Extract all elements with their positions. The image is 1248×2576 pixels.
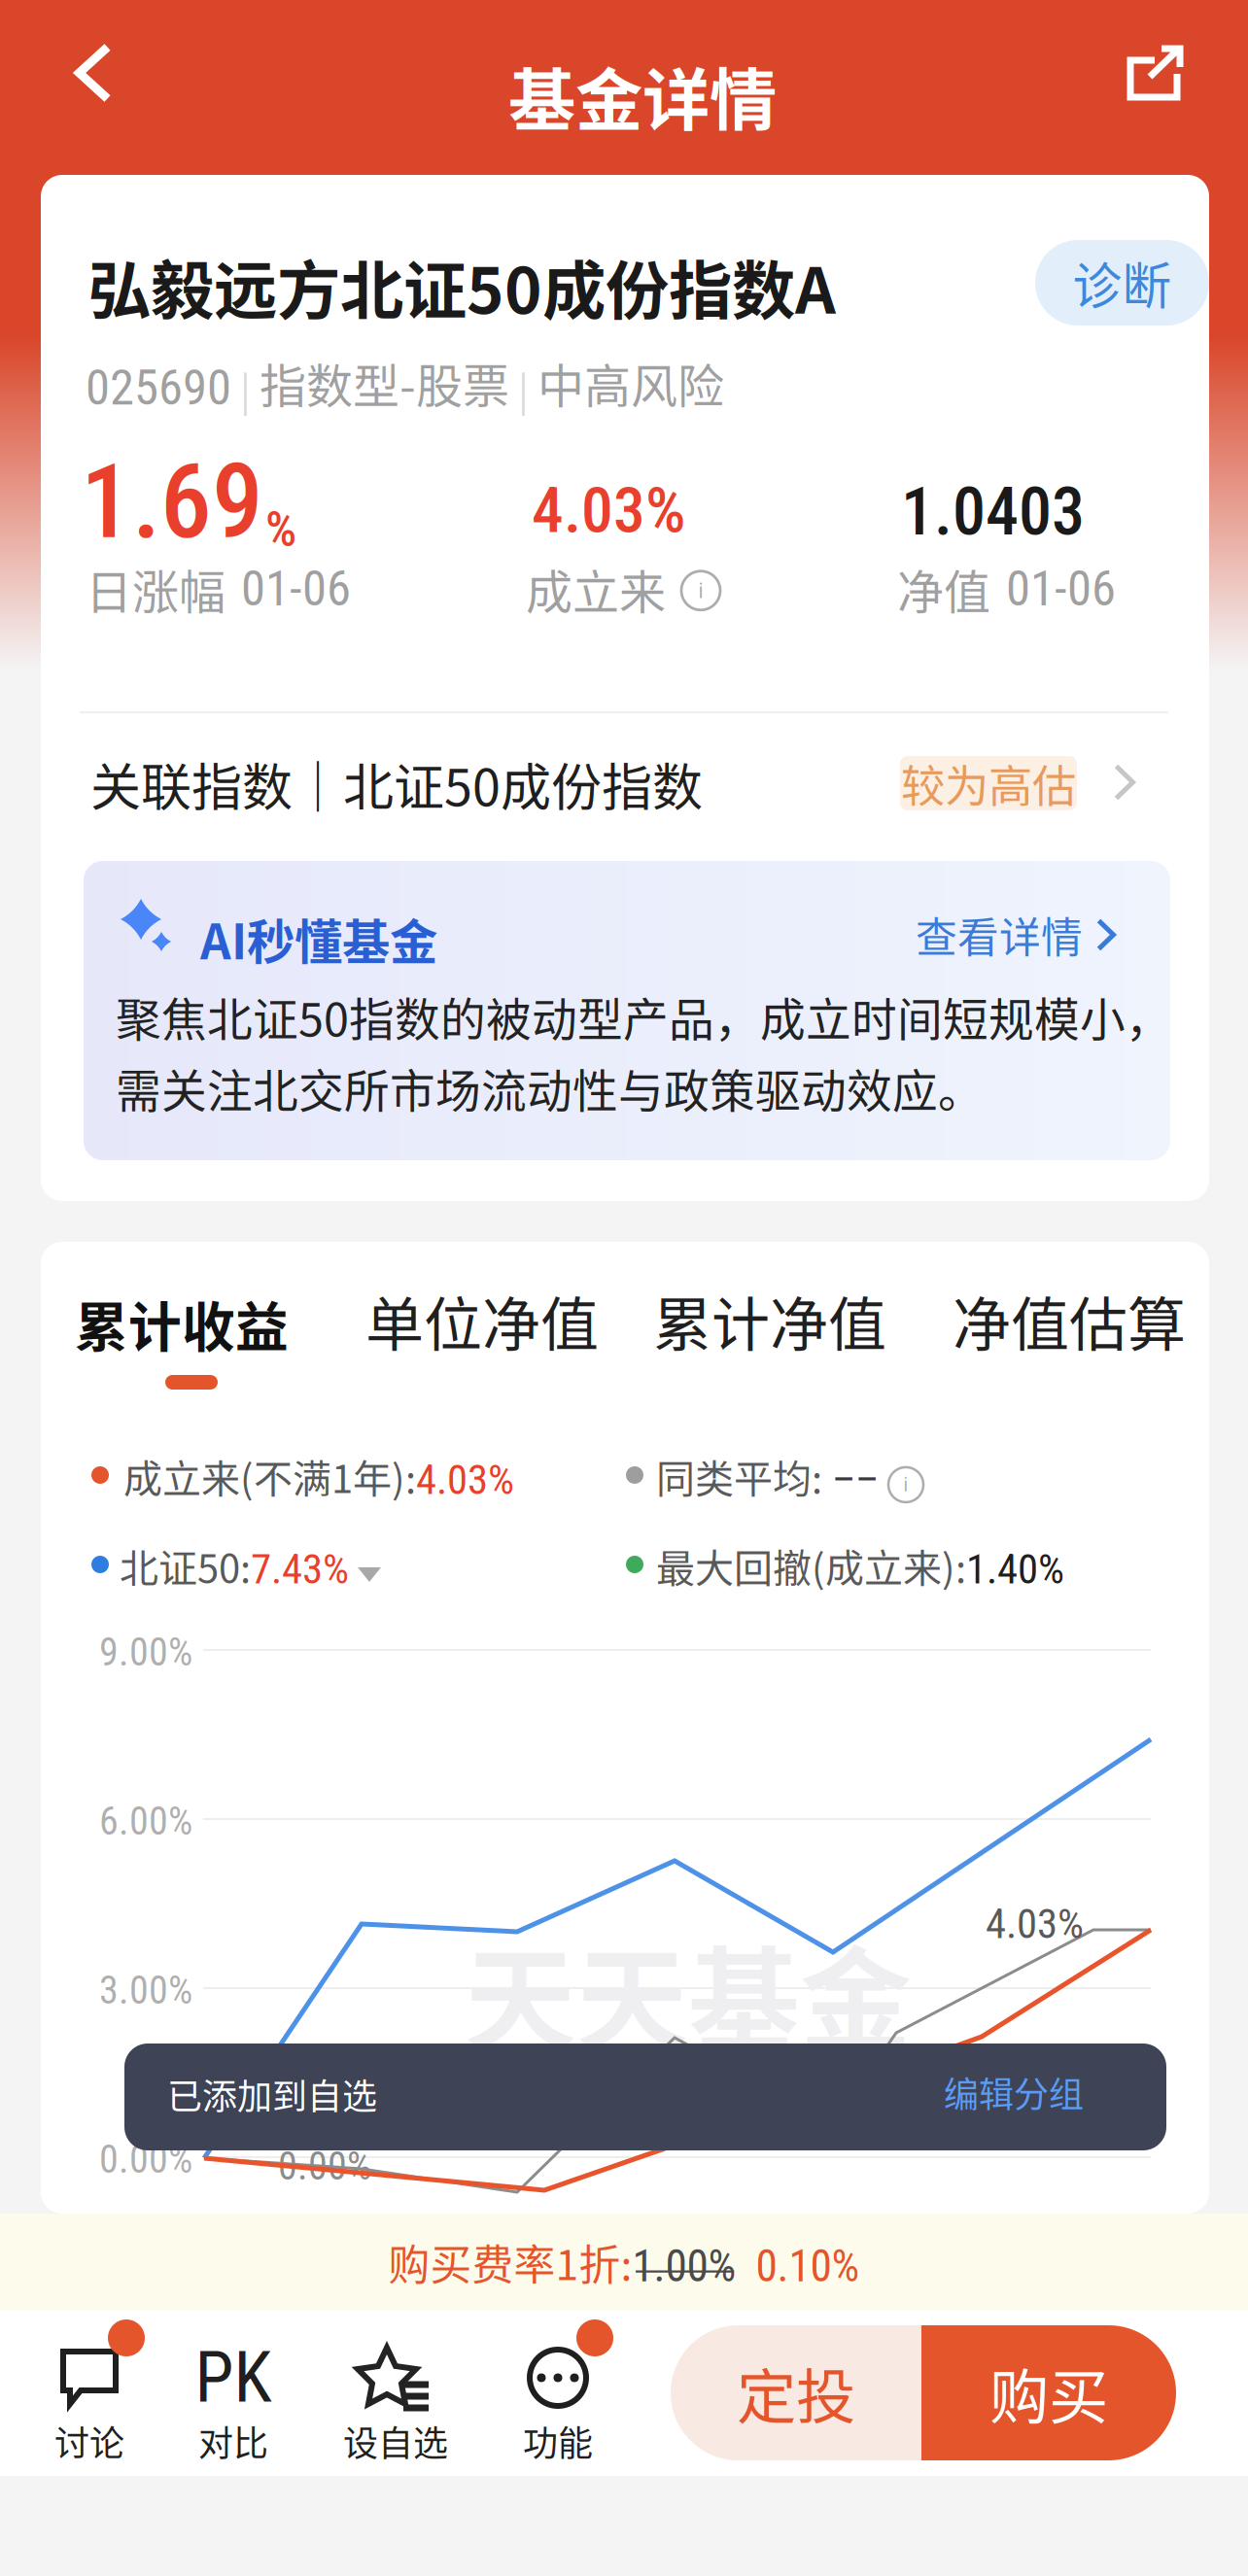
- staticText: 净值: [897, 555, 990, 622]
- staticText: 净值估算: [953, 1278, 1186, 1363]
- button[interactable]: 讨论: [17, 2318, 161, 2470]
- button[interactable]: 单位净值: [370, 1285, 594, 1357]
- button[interactable]: 诊断: [1035, 240, 1209, 326]
- staticText: 成立来(不满1年):: [123, 1448, 416, 1504]
- staticText: 购买费率1折:: [388, 2232, 632, 2292]
- staticText: |: [231, 360, 260, 416]
- staticText: 1.0403: [901, 473, 1085, 551]
- staticText: 设自选: [343, 2416, 448, 2466]
- staticText: i: [698, 578, 703, 603]
- staticText: 关联指数｜北证50成份指数: [90, 747, 703, 820]
- staticText: 单位净值: [365, 1278, 599, 1363]
- staticText: 日涨幅: [86, 555, 225, 622]
- button[interactable]: 定投: [671, 2325, 921, 2460]
- button[interactable]: 累计净值: [658, 1285, 882, 1357]
- staticText: 弘毅远方北证50成份指数A: [87, 240, 836, 332]
- staticText: 已添加到自选: [167, 2069, 377, 2119]
- button[interactable]: 编辑分组: [944, 2069, 1084, 2115]
- button[interactable]: 净值估算: [957, 1285, 1181, 1357]
- staticText: 累计收益: [75, 1285, 289, 1362]
- staticText: 中高风险: [537, 349, 724, 416]
- staticText: 定投: [737, 2350, 855, 2436]
- staticText: i: [903, 1473, 908, 1496]
- staticText: 讨论: [54, 2416, 124, 2466]
- staticText: 需关注北交所市场流动性与政策驱动效应。: [116, 1055, 984, 1121]
- staticText: 对比: [198, 2416, 268, 2466]
- staticText: 指数型-股票: [260, 349, 509, 416]
- button[interactable]: 分享: [1100, 21, 1209, 124]
- button[interactable]: 功能: [486, 2318, 630, 2470]
- staticText: 诊断: [1073, 247, 1172, 318]
- button[interactable]: 购买: [921, 2325, 1176, 2460]
- button[interactable]: 查看详情: [916, 910, 1116, 960]
- staticText: AI秒懂基金: [200, 904, 437, 973]
- staticText: 0.00%: [99, 2137, 192, 2182]
- staticText: 天天基金: [465, 1911, 912, 2073]
- button[interactable]: 关联指数｜北证50成份指数: [41, 729, 1209, 838]
- staticText: 功能: [523, 2416, 593, 2466]
- staticText: 025690: [86, 359, 231, 416]
- staticText: 01-06: [1006, 560, 1116, 618]
- staticText: 01-06: [241, 560, 351, 618]
- staticText: 较为高估: [901, 751, 1076, 815]
- staticText: 同类平均:: [656, 1448, 822, 1504]
- staticText: 最大回撤(成立来):: [656, 1537, 966, 1594]
- staticText: 0.10%: [736, 2241, 860, 2292]
- staticText: 9.00%: [99, 1630, 192, 1675]
- staticText: 基金详情: [508, 47, 777, 144]
- staticText: 3.00%: [99, 1968, 192, 2013]
- staticText: 成立来: [526, 555, 666, 622]
- staticText: 4.03%: [986, 1900, 1084, 1948]
- staticText: 4.03%: [532, 473, 686, 548]
- staticText: 1.40%: [966, 1545, 1064, 1594]
- staticText: %: [265, 501, 296, 558]
- staticText: ––: [822, 1456, 888, 1504]
- button[interactable]: PK: [161, 2318, 305, 2470]
- button[interactable]: 返回: [39, 21, 148, 124]
- staticText: 查看详情: [916, 905, 1083, 965]
- staticText: |: [509, 360, 537, 416]
- button[interactable]: 设自选: [324, 2318, 468, 2470]
- staticText: 聚焦北证50指数的被动型产品，成立时间短规模小，: [116, 983, 1171, 1049]
- staticText: 累计净值: [653, 1278, 886, 1363]
- staticText: 1.69: [81, 442, 263, 562]
- staticText: PK: [195, 2337, 272, 2419]
- staticText: 编辑分组: [944, 2067, 1084, 2117]
- staticText: 6.00%: [99, 1799, 192, 1844]
- staticText: 北证50:: [120, 1537, 251, 1594]
- staticText: 7.43%: [251, 1545, 349, 1594]
- staticText: 1.00%: [632, 2241, 736, 2292]
- staticText: 4.03%: [416, 1456, 514, 1504]
- staticText: 0.00%: [278, 2144, 371, 2189]
- staticText: 购买: [989, 2350, 1108, 2436]
